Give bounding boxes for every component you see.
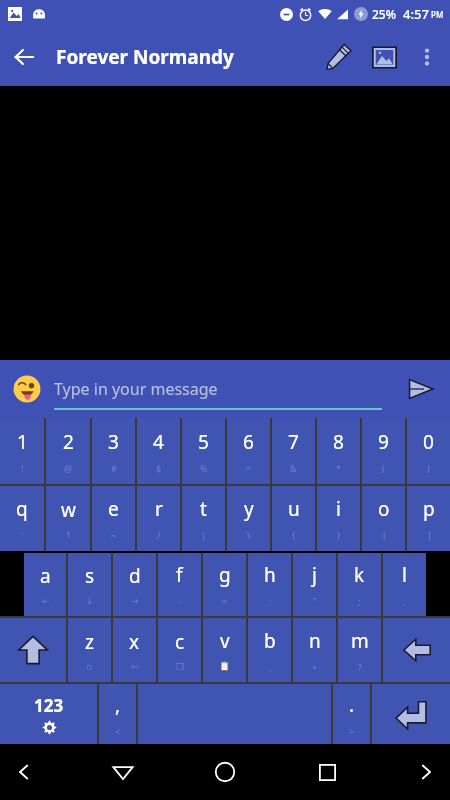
staticText: b — [264, 628, 276, 654]
button[interactable]: c — [158, 618, 201, 682]
staticText: / — [157, 529, 161, 541]
button[interactable]: 7 — [272, 418, 315, 484]
button[interactable]: k — [338, 553, 381, 616]
button[interactable]: 2 — [46, 418, 90, 484]
staticText: : — [269, 595, 272, 607]
button[interactable]: Back — [96, 745, 150, 799]
staticText: # — [111, 462, 117, 474]
button[interactable]: shift — [0, 618, 66, 682]
button[interactable]: x — [113, 618, 156, 682]
staticText: v — [220, 628, 230, 654]
staticText: ↓ — [86, 596, 94, 606]
button[interactable]: g — [203, 553, 246, 616]
button[interactable]: l — [383, 553, 426, 616]
button[interactable]: 1 — [0, 418, 44, 484]
staticText: 1 — [17, 429, 28, 455]
staticText: y — [244, 496, 254, 522]
staticText: ▫ — [86, 662, 93, 672]
button[interactable]: 9 — [362, 418, 405, 484]
button[interactable]: t — [182, 486, 225, 551]
staticText: z — [85, 629, 94, 655]
staticText: [ — [383, 529, 386, 541]
button[interactable]: e — [92, 486, 135, 551]
button[interactable]: Back — [0, 33, 48, 81]
staticText: 2 — [63, 429, 74, 455]
button[interactable]: 3 — [92, 418, 135, 484]
button[interactable]: 5 — [182, 418, 225, 484]
button[interactable]: j — [293, 553, 336, 616]
staticText: g — [219, 562, 231, 588]
button[interactable]: d — [113, 553, 156, 616]
button[interactable]: v — [203, 618, 246, 682]
button[interactable]: i — [317, 486, 360, 551]
button[interactable]: m — [338, 618, 381, 682]
button[interactable]: n — [293, 618, 336, 682]
button[interactable]: Send — [392, 360, 450, 418]
staticText: | — [201, 529, 206, 541]
button[interactable]: f — [158, 553, 201, 616]
button[interactable]: , — [99, 684, 136, 744]
button[interactable]: u — [272, 486, 315, 551]
staticText: 📋 — [219, 661, 231, 672]
staticText: u — [288, 496, 300, 522]
staticText: > — [349, 725, 355, 737]
button[interactable]: Gallery — [362, 35, 406, 79]
staticText: ❐ — [176, 662, 185, 672]
staticText: q — [16, 496, 28, 522]
button[interactable]: Edit — [316, 34, 362, 80]
staticText: 9 — [378, 429, 389, 455]
button[interactable]: b — [248, 618, 291, 682]
button[interactable]: Recents — [300, 745, 354, 799]
staticText: s — [85, 563, 95, 589]
button[interactable]: s — [68, 553, 111, 616]
staticText: ← — [42, 596, 50, 606]
staticText: , — [115, 692, 121, 718]
staticText: 7 — [288, 429, 299, 455]
staticText: & — [290, 462, 297, 474]
button[interactable]: Emoji — [0, 362, 54, 416]
staticText: ] — [428, 529, 431, 541]
staticText: t — [200, 496, 207, 522]
staticText: < — [115, 725, 121, 737]
staticText: e — [108, 496, 119, 522]
staticText: + — [312, 661, 318, 673]
staticText: @ — [64, 462, 73, 474]
button[interactable]: 8 — [317, 418, 360, 484]
button[interactable]: q — [0, 486, 44, 551]
staticText: 8 — [333, 429, 344, 455]
button[interactable]: o — [362, 486, 405, 551]
button[interactable]: r — [137, 486, 180, 551]
staticText: Forever Normandy — [56, 44, 234, 70]
button[interactable]: enter — [372, 684, 450, 744]
button[interactable]: h — [248, 553, 291, 616]
button[interactable]: Home — [198, 745, 252, 799]
button[interactable]: y — [227, 486, 270, 551]
staticText: % — [200, 462, 208, 474]
button[interactable]: w — [46, 486, 90, 551]
staticText: 6 — [243, 429, 254, 455]
button[interactable]: p — [407, 486, 450, 551]
button[interactable]: 6 — [227, 418, 270, 484]
button[interactable]: z — [68, 618, 111, 682]
staticText: ! — [21, 462, 24, 474]
button[interactable]: More options — [406, 36, 448, 78]
button[interactable]: 4 — [137, 418, 180, 484]
staticText: o — [378, 496, 390, 522]
button[interactable]: backspace — [383, 618, 450, 682]
staticText: i — [336, 496, 341, 522]
button[interactable]: . — [333, 684, 370, 744]
button[interactable]: a — [24, 553, 66, 616]
button[interactable]: Previous — [0, 748, 48, 796]
button[interactable]: num — [0, 684, 97, 744]
button[interactable]: 0 — [407, 418, 450, 484]
staticText: ( — [382, 462, 385, 474]
staticText: 25% — [372, 6, 396, 22]
staticText: ↑ — [65, 530, 73, 540]
staticText: d — [129, 563, 141, 589]
staticText: 4:57 — [403, 5, 429, 23]
staticText: → — [131, 596, 139, 606]
staticText: ✄ — [131, 662, 139, 672]
button[interactable]: Next — [402, 748, 450, 796]
staticText: n — [309, 628, 321, 654]
